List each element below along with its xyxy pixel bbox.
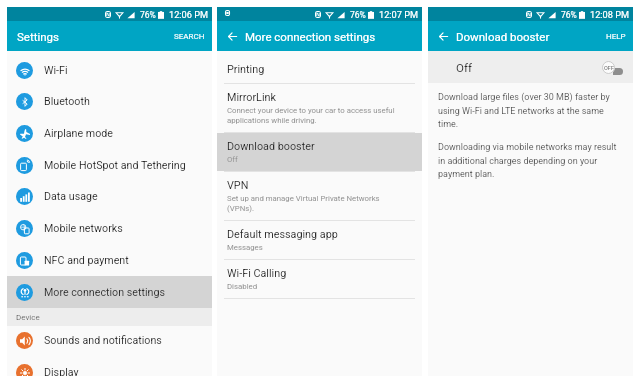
button[interactable]: Bluetooth [7,85,212,117]
staticText: Downloading via mobile networks may resu… [438,142,617,179]
staticText: MirrorLink [227,91,276,104]
staticText: Bluetooth [44,95,90,108]
button[interactable]: Download booster [217,133,422,171]
staticText: Connect your device to your car to acces… [227,106,395,125]
button[interactable]: Default messaging app [217,221,422,259]
button[interactable]: Sounds and notifications [7,324,212,356]
button[interactable]: Airplane mode [7,117,212,149]
staticText: Off [456,61,472,74]
staticText: Download booster [227,140,315,153]
button[interactable]: Wi-Fi Calling [217,260,422,298]
staticText: Wi-Fi Calling [227,267,287,280]
staticText: Messages [227,243,263,252]
staticText: 76% [561,10,577,20]
staticText: Download booster [456,30,550,43]
staticText: NFC and payment [44,254,129,267]
staticText: 12:06 PM [169,9,208,20]
staticText: OFF [604,65,614,71]
button[interactable]: NFC and payment [7,244,212,276]
staticText: HELP [606,32,626,41]
staticText: 12:07 PM [379,9,418,20]
staticText: Mobile HotSpot and Tethering [44,159,186,172]
staticText: Set up and manage Virtual Private Networ… [227,194,380,213]
staticText: 76% [140,10,156,20]
button[interactable]: More connection settings [7,276,212,308]
staticText: Settings [17,30,59,43]
button[interactable]: Display [7,356,212,376]
staticText: Data usage [44,190,98,203]
staticText: Disabled [227,282,258,291]
staticText: Sounds and notifications [44,334,162,347]
button[interactable]: Navigate up [222,21,242,51]
staticText: 76% [350,10,366,20]
staticText: More connection settings [245,30,376,43]
staticText: Mobile networks [44,222,123,235]
staticText: Device [16,313,40,322]
button[interactable]: Mobile networks [7,212,212,244]
staticText: Off [227,155,238,164]
button[interactable]: Wi-Fi [7,54,212,86]
button[interactable]: Printing [217,56,422,83]
staticText: Airplane mode [44,127,113,140]
button[interactable]: Off [428,51,633,83]
staticText: Default messaging app [227,228,338,241]
button[interactable]: SEARCH [164,21,212,51]
staticText: Wi-Fi [44,64,68,77]
staticText: Display [44,366,79,376]
staticText: Printing [227,63,265,76]
button[interactable]: Download booster toggle, off [602,60,623,74]
button[interactable]: Navigate up [433,21,453,51]
button[interactable]: HELP [585,21,633,51]
staticText: SEARCH [174,32,205,41]
staticText: Download large files (over 30 MB) faster… [438,92,610,129]
staticText: 12:08 PM [590,9,629,20]
staticText: VPN [227,179,249,192]
button[interactable]: MirrorLink [217,84,422,132]
button[interactable]: VPN [217,172,422,220]
staticText: More connection settings [44,286,165,299]
button[interactable]: Mobile HotSpot and Tethering [7,149,212,181]
button[interactable]: Data usage [7,180,212,212]
